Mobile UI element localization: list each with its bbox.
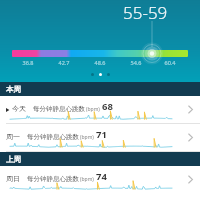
staticText: 55-59 — [123, 1, 168, 24]
staticText: 42.7 — [52, 59, 76, 66]
staticText: 74 — [96, 170, 107, 183]
button[interactable]: 今天 — [0, 96, 200, 123]
button[interactable]: 周日 — [0, 166, 200, 193]
staticText: 每分钟静息心跳数 — [27, 175, 79, 183]
button[interactable]: 上周 — [0, 152, 200, 166]
staticText: 60.4 — [158, 59, 182, 66]
staticText: (bpm) — [80, 134, 94, 141]
staticText: 每分钟静息心跳数 — [27, 133, 79, 141]
staticText: 每分钟静息心跳数 — [33, 105, 85, 113]
staticText: 48.6 — [88, 59, 112, 66]
staticText: (bpm) — [80, 176, 94, 183]
staticText: 本周 — [6, 85, 21, 94]
staticText: 今天 — [12, 104, 26, 113]
staticText: 68 — [102, 100, 113, 113]
button[interactable]: 查看详情 — [185, 104, 196, 115]
button[interactable]: 周一 — [0, 124, 200, 151]
button[interactable]: 查看详情 — [185, 174, 196, 185]
button[interactable]: 本周 — [0, 82, 200, 96]
staticText: 71 — [96, 128, 107, 141]
staticText: 54.6 — [124, 59, 148, 66]
button[interactable]: 查看详情 — [185, 132, 196, 143]
staticText: (bpm) — [86, 106, 100, 113]
staticText: 周日 — [6, 174, 20, 183]
staticText: 上周 — [6, 155, 21, 164]
staticText: 周一 — [6, 132, 20, 141]
staticText: 36.8 — [16, 59, 40, 66]
